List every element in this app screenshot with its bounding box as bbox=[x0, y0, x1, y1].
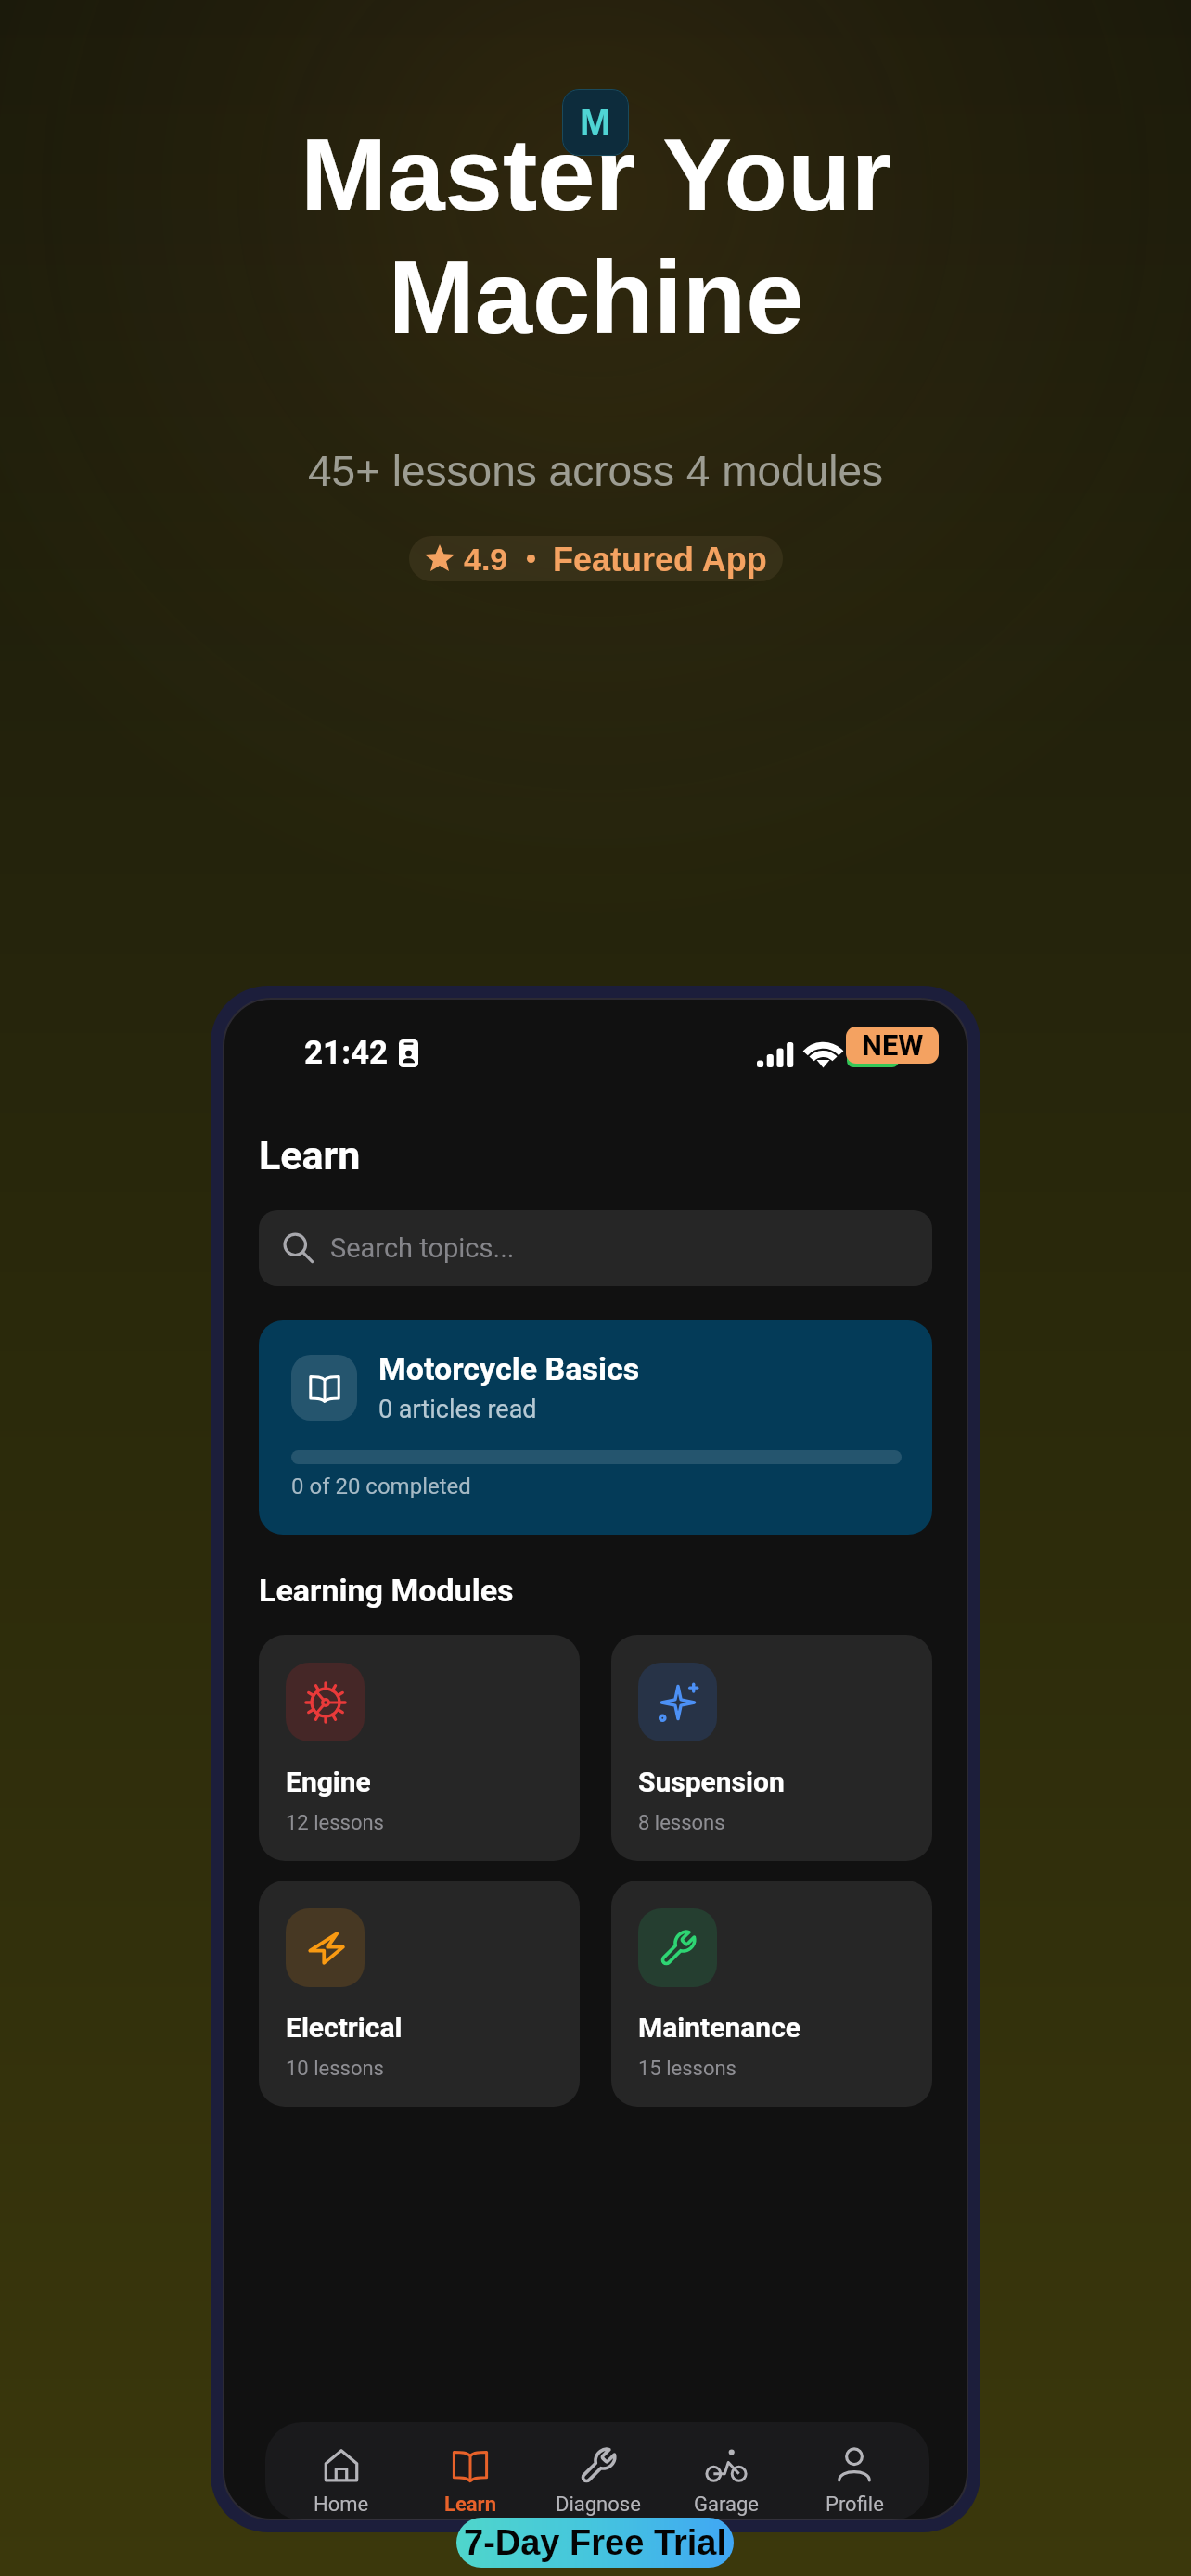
staticText: Motorcycle Basics bbox=[378, 1350, 640, 1387]
button[interactable]: Suspension bbox=[611, 1635, 932, 1861]
staticText: 45+ lessons across 4 modules bbox=[308, 447, 884, 494]
staticText: 0 of 20 completed bbox=[291, 1473, 471, 1499]
button[interactable]: Motorcycle Basics bbox=[259, 1320, 932, 1535]
button[interactable]: Garage bbox=[662, 2422, 790, 2520]
button[interactable]: NEW bbox=[846, 1027, 939, 1064]
staticText: Learning Modules bbox=[259, 1572, 514, 1609]
staticText: NEW bbox=[862, 1028, 924, 1062]
staticText: 15 lessons bbox=[638, 2057, 736, 2081]
staticText: M bbox=[580, 102, 611, 144]
staticText: 4.9 bbox=[464, 542, 508, 577]
button[interactable]: Maintenance bbox=[611, 1881, 932, 2107]
staticText: Maintenance bbox=[638, 2011, 801, 2044]
staticText: Diagnose bbox=[556, 2493, 641, 2517]
staticText: 10 lessons bbox=[286, 2057, 384, 2081]
staticText: Master Your bbox=[301, 117, 891, 233]
staticText: Suspension bbox=[638, 1766, 785, 1798]
staticText: Learn bbox=[444, 2493, 496, 2517]
staticText: Machine bbox=[388, 239, 804, 355]
staticText: Featured App bbox=[553, 541, 767, 578]
staticText: Search topics... bbox=[330, 1232, 515, 1264]
button[interactable]: Diagnose bbox=[534, 2422, 662, 2520]
staticText: 21:42 bbox=[304, 1034, 389, 1072]
button[interactable]: 7-Day Free Trial bbox=[456, 2518, 734, 2568]
staticText: Engine bbox=[286, 1766, 371, 1798]
button[interactable]: Profile bbox=[790, 2422, 918, 2520]
staticText: 0 articles read bbox=[378, 1395, 537, 1424]
button[interactable]: Engine bbox=[259, 1635, 580, 1861]
button[interactable]: Search topics... bbox=[259, 1210, 932, 1286]
staticText: 7-Day Free Trial bbox=[464, 2523, 727, 2562]
staticText: 8 lessons bbox=[638, 1811, 725, 1835]
staticText: Electrical bbox=[286, 2011, 403, 2044]
button[interactable]: Electrical bbox=[259, 1881, 580, 2107]
button[interactable]: 4.9 bbox=[409, 536, 783, 581]
staticText: Garage bbox=[694, 2493, 759, 2517]
staticText: Learn bbox=[259, 1132, 361, 1179]
staticText: Profile bbox=[826, 2493, 884, 2517]
button[interactable]: Learn bbox=[405, 2422, 534, 2520]
staticText: 12 lessons bbox=[286, 1811, 384, 1835]
button[interactable]: Home bbox=[276, 2422, 405, 2520]
staticText: Home bbox=[314, 2493, 369, 2517]
